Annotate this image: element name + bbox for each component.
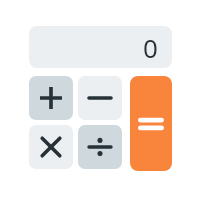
button[interactable]: Plus <box>29 76 73 120</box>
staticText: 0 <box>143 30 158 65</box>
button[interactable]: Equals <box>130 76 172 171</box>
button[interactable]: Minus <box>78 76 122 120</box>
button[interactable]: Divide <box>78 125 122 169</box>
button[interactable]: Multiply <box>29 125 73 169</box>
button[interactable]: 0 <box>29 26 172 68</box>
